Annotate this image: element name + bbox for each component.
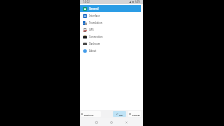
staticText: Restore defaults bbox=[84, 113, 101, 116]
button[interactable]: Dashcam bbox=[80, 40, 141, 47]
button[interactable]: Recents bbox=[89, 118, 104, 126]
button[interactable]: Interface bbox=[80, 12, 141, 19]
staticText: Interface bbox=[89, 14, 100, 17]
button[interactable]: Cancel bbox=[128, 111, 141, 117]
button[interactable]: Translation bbox=[80, 19, 141, 26]
button[interactable]: Connection bbox=[80, 33, 141, 40]
button[interactable]: About bbox=[80, 47, 141, 54]
staticText: OK bbox=[119, 113, 123, 116]
button[interactable]: Home bbox=[104, 118, 119, 126]
staticText: General bbox=[89, 7, 99, 10]
staticText: 14:02 bbox=[83, 0, 90, 4]
button[interactable]: Back bbox=[119, 118, 134, 126]
button[interactable]: OK bbox=[113, 111, 126, 117]
staticText: About bbox=[89, 49, 97, 52]
button[interactable]: General bbox=[80, 5, 141, 12]
button[interactable]: GPS bbox=[80, 26, 141, 33]
staticText: Translation bbox=[89, 21, 103, 24]
staticText: Cancel bbox=[132, 113, 141, 116]
staticText: Dashcam bbox=[89, 42, 101, 45]
staticText: 64% bbox=[135, 0, 141, 4]
staticText: GPS bbox=[89, 28, 94, 31]
button[interactable]: Restore defaults bbox=[81, 111, 101, 117]
staticText: Connection bbox=[89, 35, 103, 38]
